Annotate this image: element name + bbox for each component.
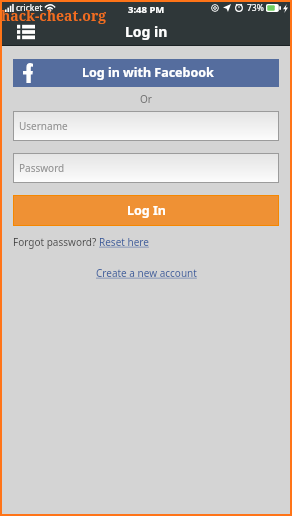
button[interactable]: Menu <box>8 17 36 45</box>
button[interactable]: Create a new account <box>96 266 197 280</box>
staticText: 3:48 PM <box>128 3 165 16</box>
staticText: Log in <box>125 22 168 41</box>
button[interactable]: Log In <box>13 195 279 226</box>
staticText: Log in with Facebook <box>82 64 214 81</box>
staticText: 73% <box>247 2 264 14</box>
staticText: Password <box>19 161 65 175</box>
button[interactable]: Password <box>13 153 279 183</box>
staticText: hack-cheat.org <box>1 6 107 25</box>
staticText: Or <box>140 92 152 106</box>
staticText: Forgot password? <box>13 235 99 249</box>
button[interactable]: Reset here <box>99 234 149 250</box>
staticText: Log In <box>127 202 166 219</box>
button[interactable]: Username <box>13 111 279 141</box>
button[interactable]: Log in with Facebook <box>13 59 279 87</box>
staticText: Username <box>19 119 68 133</box>
staticText: cricket <box>16 2 43 14</box>
